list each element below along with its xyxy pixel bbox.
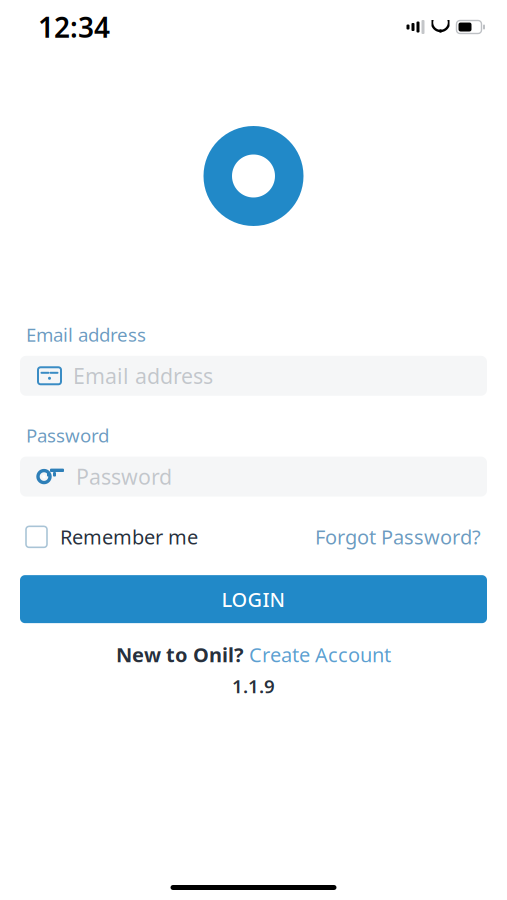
staticText: Password [26, 423, 109, 448]
staticText: Create Account [249, 641, 391, 668]
button[interactable]: Forgot Password? [315, 524, 481, 550]
button[interactable]: Create Account [249, 641, 391, 668]
staticText: 1.1.9 [232, 674, 275, 698]
staticText: Email address [73, 362, 213, 390]
staticText: Forgot Password? [315, 524, 481, 550]
staticText: New to Onil? [116, 641, 244, 668]
button[interactable]: LOGIN [0, 575, 507, 623]
staticText: Email address [26, 322, 146, 347]
staticText: Remember me [60, 524, 198, 550]
staticText: LOGIN [221, 586, 285, 612]
staticText: Password [76, 462, 172, 491]
button[interactable]: Remember me [26, 524, 198, 550]
staticText: 12:34 [38, 8, 110, 46]
